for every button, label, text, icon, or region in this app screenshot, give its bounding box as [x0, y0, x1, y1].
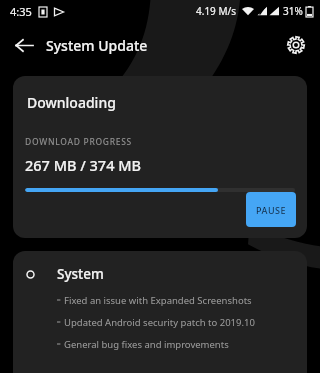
staticText: 267 MB / 374 MB: [25, 155, 142, 175]
button[interactable]: Downloading: [13, 76, 307, 238]
staticText: 31%: [283, 4, 303, 18]
staticText: System: [57, 265, 104, 283]
staticText: Updated Android security patch to 2019.1…: [64, 316, 255, 329]
staticText: Downloading: [27, 93, 116, 112]
staticText: System Update: [46, 36, 148, 55]
staticText: 4:35: [10, 4, 32, 19]
staticText: Fixed an issue with Expanded Screenshots: [64, 294, 252, 307]
button[interactable]: PAUSE: [246, 192, 296, 227]
staticText: PAUSE: [256, 204, 287, 216]
button[interactable]: Back: [8, 29, 40, 61]
staticText: DOWNLOAD PROGRESS: [25, 136, 132, 148]
staticText: 4.19 M/s: [196, 4, 237, 18]
staticText: General bug fixes and improvements: [64, 338, 229, 351]
button[interactable]: Settings: [280, 29, 312, 61]
button[interactable]: System: [13, 251, 307, 373]
